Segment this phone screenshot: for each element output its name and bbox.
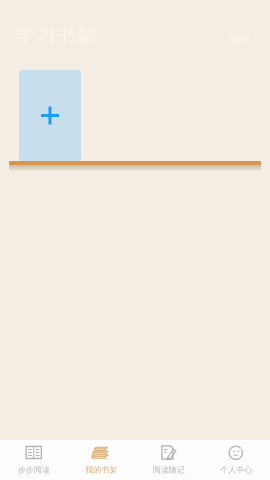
staticText: 我的书架 xyxy=(85,465,117,475)
staticText: 学习书架 xyxy=(16,23,96,48)
staticText: 个人中心 xyxy=(220,465,252,475)
button[interactable]: 步步阅读 xyxy=(0,439,67,480)
staticText: 编辑 xyxy=(229,32,251,45)
staticText: 步步阅读 xyxy=(18,465,50,475)
button[interactable]: 阅读随记 xyxy=(135,439,202,480)
button[interactable]: 个人中心 xyxy=(202,439,270,480)
staticText: 阅读随记 xyxy=(153,465,185,475)
button[interactable]: 我的书架 xyxy=(67,439,135,480)
button[interactable]: 添加书籍 xyxy=(19,70,81,161)
